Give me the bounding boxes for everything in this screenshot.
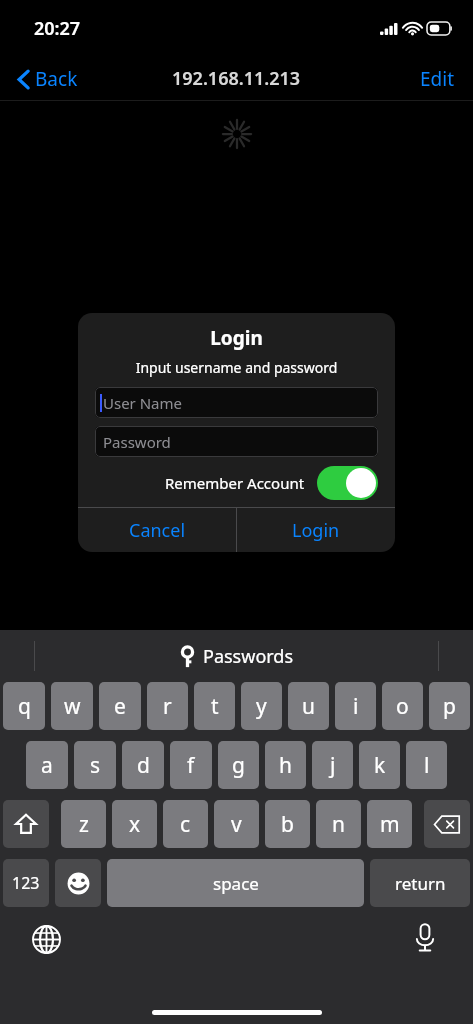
button[interactable]: j bbox=[312, 741, 353, 789]
staticText: w bbox=[64, 692, 81, 721]
staticText: f bbox=[187, 751, 195, 780]
button[interactable]: Passwords bbox=[170, 640, 304, 673]
staticText: j bbox=[330, 751, 336, 780]
staticText: n bbox=[332, 810, 345, 839]
staticText: r bbox=[163, 692, 172, 721]
staticText: c bbox=[180, 810, 191, 839]
staticText: Input username and password bbox=[78, 358, 395, 377]
staticText: a bbox=[41, 751, 53, 780]
button[interactable]: Shift bbox=[3, 800, 49, 848]
staticText: g bbox=[232, 751, 245, 780]
staticText: k bbox=[374, 751, 386, 780]
button[interactable]: c bbox=[163, 800, 208, 848]
button[interactable]: return bbox=[370, 859, 470, 907]
staticText: p bbox=[443, 692, 456, 721]
button[interactable]: Dictation bbox=[409, 921, 441, 953]
staticText: d bbox=[137, 751, 150, 780]
button[interactable]: e bbox=[99, 682, 141, 730]
button[interactable]: b bbox=[265, 800, 310, 848]
staticText: q bbox=[18, 692, 31, 721]
button[interactable]: r bbox=[147, 682, 188, 730]
staticText: Password bbox=[103, 432, 171, 452]
button[interactable]: x bbox=[112, 800, 157, 848]
staticText: s bbox=[90, 751, 101, 780]
button[interactable]: w bbox=[51, 682, 93, 730]
button[interactable]: Edit bbox=[402, 60, 473, 98]
button[interactable]: p bbox=[429, 682, 470, 730]
staticText: o bbox=[396, 692, 409, 721]
staticText: t bbox=[211, 692, 219, 721]
staticText: Login bbox=[292, 518, 340, 543]
button[interactable]: n bbox=[316, 800, 361, 848]
button[interactable]: m bbox=[367, 800, 412, 848]
button[interactable]: f bbox=[170, 741, 212, 789]
staticText: y bbox=[256, 692, 267, 721]
button[interactable]: Login bbox=[237, 508, 395, 552]
button[interactable]: Backspace bbox=[424, 800, 470, 848]
staticText: Login bbox=[78, 325, 395, 351]
staticText: Back bbox=[35, 66, 78, 92]
button[interactable]: h bbox=[265, 741, 306, 789]
button[interactable]: z bbox=[61, 800, 106, 848]
staticText: 192.168.11.213 bbox=[172, 66, 301, 91]
staticText: Passwords bbox=[203, 644, 294, 669]
button[interactable]: Emoji bbox=[55, 859, 101, 907]
staticText: 20:27 bbox=[34, 16, 81, 41]
button[interactable]: y bbox=[241, 682, 282, 730]
button[interactable]: t bbox=[194, 682, 235, 730]
button[interactable]: i bbox=[335, 682, 376, 730]
button[interactable]: q bbox=[3, 682, 45, 730]
button[interactable]: space bbox=[107, 859, 364, 907]
button[interactable]: v bbox=[214, 800, 259, 848]
button[interactable]: 123 bbox=[3, 859, 49, 907]
staticText: h bbox=[279, 751, 292, 780]
staticText: User Name bbox=[103, 393, 183, 413]
staticText: Cancel bbox=[129, 518, 186, 543]
staticText: Remember Account bbox=[165, 473, 305, 493]
button[interactable]: g bbox=[218, 741, 259, 789]
staticText: u bbox=[302, 692, 315, 721]
button[interactable]: d bbox=[122, 741, 164, 789]
staticText: b bbox=[281, 810, 294, 839]
staticText: i bbox=[353, 692, 359, 721]
button[interactable]: l bbox=[406, 741, 447, 789]
button[interactable]: u bbox=[288, 682, 329, 730]
staticText: z bbox=[79, 810, 89, 839]
button[interactable]: User Name bbox=[95, 387, 378, 418]
button[interactable]: Back bbox=[0, 60, 90, 98]
staticText: 123 bbox=[12, 872, 40, 894]
button[interactable]: k bbox=[359, 741, 400, 789]
button[interactable]: o bbox=[382, 682, 423, 730]
button[interactable]: Remember Account toggle bbox=[317, 466, 378, 500]
staticText: x bbox=[129, 810, 141, 839]
staticText: Edit bbox=[420, 66, 455, 92]
button[interactable]: Password bbox=[95, 426, 378, 457]
staticText: m bbox=[380, 810, 400, 839]
staticText: return bbox=[395, 872, 446, 895]
button[interactable]: s bbox=[74, 741, 116, 789]
button[interactable]: Change keyboard bbox=[30, 923, 62, 955]
staticText: space bbox=[213, 872, 259, 895]
staticText: e bbox=[114, 692, 126, 721]
button[interactable]: a bbox=[26, 741, 68, 789]
button[interactable]: Cancel bbox=[78, 508, 236, 552]
staticText: l bbox=[424, 751, 430, 780]
staticText: v bbox=[231, 810, 242, 839]
